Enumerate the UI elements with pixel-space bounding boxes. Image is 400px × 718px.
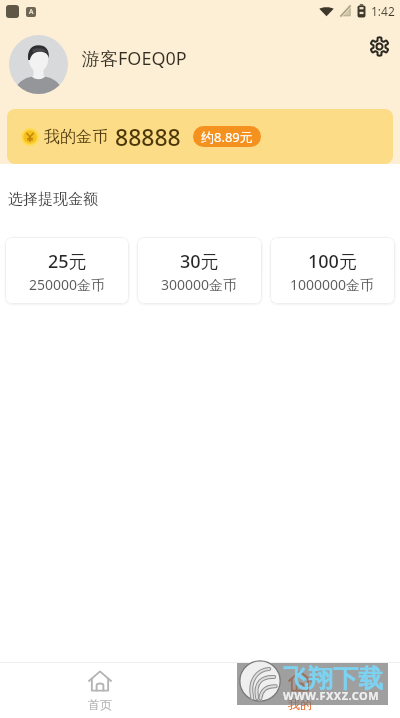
staticText: 1000000金币 <box>290 275 375 294</box>
staticText: 100元 <box>308 249 357 274</box>
button[interactable]: 25元 <box>5 237 129 304</box>
staticText: 选择提现金额 <box>8 190 98 209</box>
staticText: 30元 <box>180 249 219 274</box>
staticText: 我的金币 <box>44 127 108 147</box>
staticText: 游客FOEQ0P <box>82 46 187 71</box>
staticText: 88888 <box>115 121 181 152</box>
staticText: 300000金币 <box>161 275 238 294</box>
staticText: 1:42 <box>371 3 395 19</box>
button[interactable]: 我的 <box>200 663 400 718</box>
staticText: 我的 <box>288 697 312 712</box>
staticText: 约8.89元 <box>201 128 253 146</box>
staticText: 首页 <box>88 697 112 712</box>
button[interactable]: 100元 <box>270 237 395 304</box>
staticText: 飞翔下载 <box>283 663 383 694</box>
staticText: WWW.FXXZ.COM <box>283 688 380 703</box>
staticText: A <box>29 7 34 17</box>
button[interactable]: 30元 <box>137 237 262 304</box>
button[interactable]: 首页 <box>0 663 200 718</box>
button[interactable]: Settings <box>363 30 395 62</box>
staticText: 25元 <box>48 249 87 274</box>
button[interactable]: 我的金币 <box>7 109 393 164</box>
staticText: 250000金币 <box>29 275 106 294</box>
